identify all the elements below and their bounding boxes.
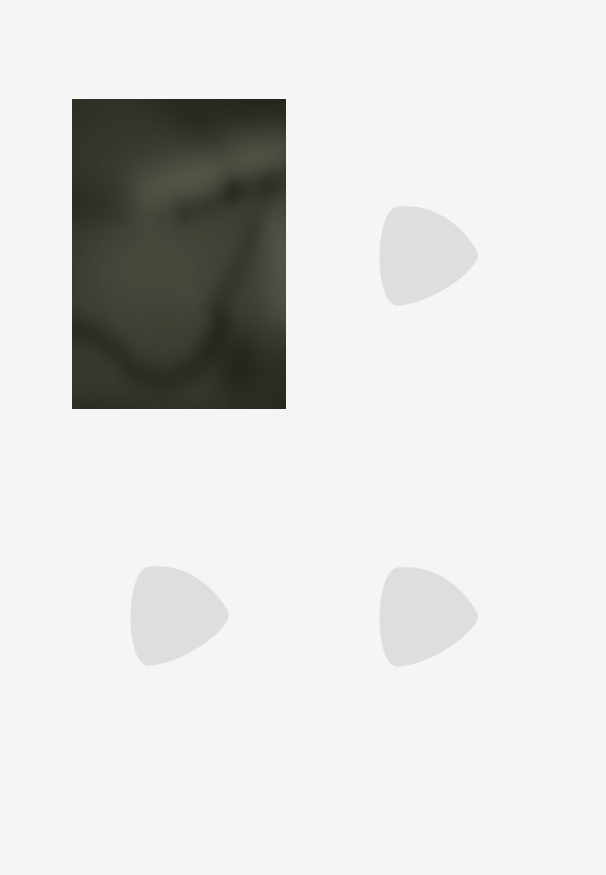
button[interactable]: Photo loading [54, 431, 304, 800]
button[interactable]: Photo loading [303, 76, 552, 436]
button[interactable]: Photo [54, 96, 304, 412]
button[interactable]: Photo loading [303, 444, 552, 790]
